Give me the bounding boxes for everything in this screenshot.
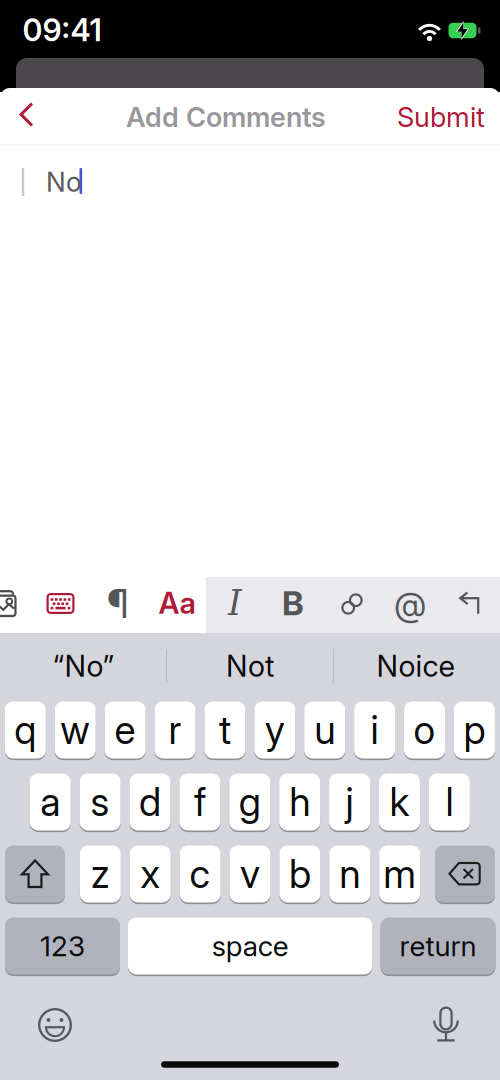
staticText: c <box>190 851 211 897</box>
button[interactable]: g <box>229 772 270 831</box>
staticText: Add Comments <box>126 100 326 134</box>
button[interactable]: n <box>329 844 370 903</box>
button[interactable]: l <box>429 772 470 831</box>
button[interactable]: Mention <box>388 582 432 626</box>
staticText: s <box>91 779 110 825</box>
button[interactable]: Undo <box>459 592 480 614</box>
button[interactable]: a <box>30 772 71 831</box>
button[interactable]: j <box>329 772 370 831</box>
staticText: Aa <box>158 585 195 621</box>
button[interactable]: Delete <box>435 844 495 903</box>
staticText: i <box>371 707 379 753</box>
button[interactable]: k <box>379 772 420 831</box>
button[interactable]: Hide keyboard <box>46 593 74 614</box>
button[interactable]: Italic <box>215 581 255 625</box>
staticText: h <box>289 779 310 825</box>
staticText: q <box>14 707 36 753</box>
button[interactable]: e <box>105 700 146 759</box>
staticText: p <box>463 707 485 753</box>
button[interactable]: “No” <box>8 638 158 694</box>
staticText: z <box>91 851 110 897</box>
staticText: f <box>194 779 206 825</box>
button[interactable]: Paragraph style <box>98 582 138 626</box>
button[interactable]: Shift <box>5 844 65 903</box>
button[interactable]: Submit <box>381 97 500 137</box>
staticText: k <box>389 779 409 825</box>
staticText: B <box>282 583 304 623</box>
staticText: o <box>413 707 435 753</box>
staticText: No <box>46 166 82 198</box>
staticText: r <box>168 707 181 753</box>
staticText: Submit <box>397 100 485 134</box>
staticText: y <box>265 707 285 753</box>
staticText: v <box>240 851 260 897</box>
staticText: return <box>399 929 476 963</box>
button[interactable]: space <box>128 916 372 975</box>
staticText: w <box>60 707 90 753</box>
button[interactable]: t <box>204 700 245 759</box>
staticText: n <box>339 851 360 897</box>
button[interactable]: Text format <box>154 581 200 625</box>
button[interactable]: f <box>179 772 220 831</box>
staticText: l <box>445 779 453 825</box>
button[interactable]: r <box>154 700 195 759</box>
staticText: g <box>239 779 261 825</box>
staticText: b <box>289 851 311 897</box>
staticText: 09:41 <box>22 11 101 48</box>
button[interactable]: b <box>279 844 320 903</box>
staticText: a <box>40 779 60 825</box>
button[interactable]: Bold <box>273 581 313 625</box>
button[interactable]: i <box>354 700 395 759</box>
staticText: space <box>212 929 289 963</box>
button[interactable]: y <box>254 700 295 759</box>
staticText: e <box>115 707 136 753</box>
button[interactable]: c <box>180 844 221 903</box>
staticText: t <box>219 707 231 753</box>
button[interactable]: h <box>279 772 320 831</box>
staticText: ¶ <box>107 581 129 627</box>
button[interactable]: z <box>80 844 121 903</box>
button[interactable]: Emoji <box>38 1008 72 1042</box>
staticText: u <box>314 707 335 753</box>
button[interactable]: Back <box>19 102 43 132</box>
button[interactable]: Insert photo <box>0 588 15 620</box>
button[interactable]: Not <box>175 638 325 694</box>
staticText: Not <box>226 648 274 684</box>
button[interactable]: p <box>454 700 495 759</box>
staticText: m <box>383 851 416 897</box>
staticText: 123 <box>40 929 85 963</box>
button[interactable]: 123 <box>5 916 120 975</box>
button[interactable]: u <box>304 700 345 759</box>
staticText: j <box>346 779 354 825</box>
button[interactable]: Insert link <box>341 593 363 615</box>
button[interactable]: q <box>5 700 46 759</box>
staticText: x <box>140 851 160 897</box>
staticText: Noice <box>376 648 454 684</box>
button[interactable]: Noice <box>340 638 490 694</box>
staticText: @ <box>394 584 426 624</box>
button[interactable]: return <box>380 916 495 975</box>
button[interactable]: o <box>404 700 445 759</box>
button[interactable]: Dictate <box>434 1006 458 1041</box>
button[interactable]: d <box>129 772 170 831</box>
staticText: “No” <box>52 648 114 684</box>
button[interactable]: x <box>130 844 171 903</box>
staticText: I <box>228 583 242 623</box>
button[interactable]: v <box>229 844 270 903</box>
staticText: d <box>139 779 161 825</box>
button[interactable]: s <box>80 772 121 831</box>
button[interactable]: m <box>379 844 420 903</box>
button[interactable]: w <box>55 700 96 759</box>
